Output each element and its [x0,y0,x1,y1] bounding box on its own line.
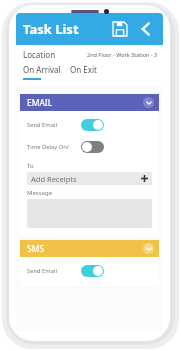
button[interactable]: Off [81,141,104,153]
staticText: Send Email [27,267,57,275]
staticText: 2nd Floor - Work Station - 3 [87,51,158,58]
staticText: EMAIL [27,97,53,109]
button[interactable]: On [81,265,104,277]
staticText: Send Email [27,121,57,129]
button[interactable]: EMAIL [20,94,159,111]
staticText: On Arrival [23,64,61,75]
staticText: To [27,162,34,170]
button[interactable]: On Arrival [23,64,61,80]
staticText: Message [27,189,53,197]
staticText: Task List [23,20,79,38]
button[interactable]: On Exit [70,64,97,75]
staticText: On Exit [70,64,97,75]
staticText: Time Delay On/Off [27,143,75,151]
staticText: SMS [27,243,45,255]
button[interactable]: Save [109,18,131,40]
button[interactable]: SMS [20,240,159,257]
other: Collapse SMS [143,243,154,254]
button[interactable]: Add Receipts [27,172,152,185]
other: Collapse EMAIL [143,97,154,108]
staticText: Location [23,49,56,60]
button[interactable]: On [81,119,104,131]
button[interactable]: Back [135,18,157,40]
staticText: Add Receipts [31,174,77,184]
